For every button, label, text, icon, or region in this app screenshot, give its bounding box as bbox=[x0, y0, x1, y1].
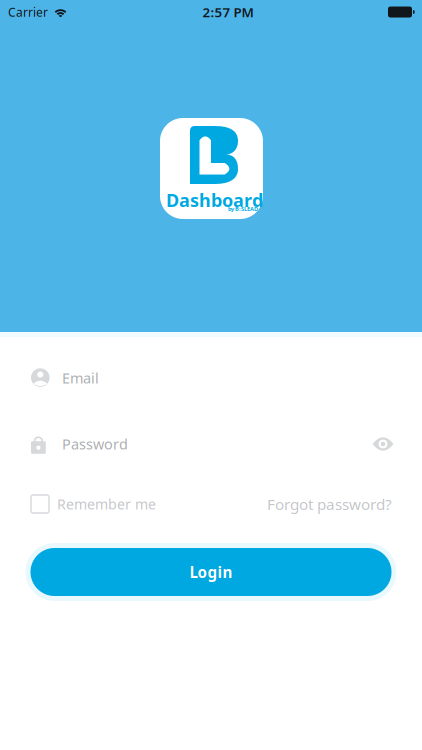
staticText: 2:57 PM bbox=[202, 3, 253, 21]
button[interactable]: Forgot password? bbox=[261, 486, 392, 522]
button[interactable]: Login bbox=[0, 540, 422, 604]
staticText: Forgot password? bbox=[267, 494, 392, 514]
staticText: Carrier bbox=[8, 4, 48, 20]
staticText: by B:SLEAD bbox=[228, 205, 258, 212]
button[interactable]: Show password bbox=[366, 426, 400, 462]
button[interactable]: Remember me bbox=[31, 486, 162, 522]
staticText: Email bbox=[62, 368, 99, 387]
staticText: Remember me bbox=[57, 495, 156, 513]
staticText: Password bbox=[62, 434, 128, 453]
staticText: Dashboard bbox=[166, 188, 263, 212]
staticText: Login bbox=[189, 562, 232, 582]
